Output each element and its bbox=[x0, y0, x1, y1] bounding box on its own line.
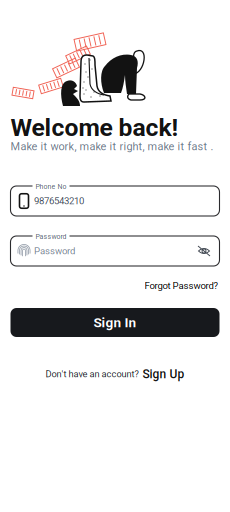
staticText: Sign Up bbox=[142, 367, 184, 381]
staticText: Phone No bbox=[35, 183, 66, 191]
staticText: Password bbox=[34, 245, 75, 257]
button[interactable]: Sign Up bbox=[142, 367, 184, 381]
button[interactable]: Sign In bbox=[10, 308, 219, 337]
button[interactable]: Forgot Password? bbox=[139, 277, 223, 294]
staticText: Sign In bbox=[93, 314, 136, 330]
staticText: Password bbox=[35, 233, 66, 241]
staticText: Make it work, make it right, make it fas… bbox=[10, 140, 213, 153]
staticText: Forgot Password? bbox=[144, 280, 218, 291]
staticText: Don't have an account? bbox=[45, 369, 138, 379]
staticText: 9876543210 bbox=[34, 195, 84, 207]
staticText: Welcome back! bbox=[10, 113, 178, 142]
